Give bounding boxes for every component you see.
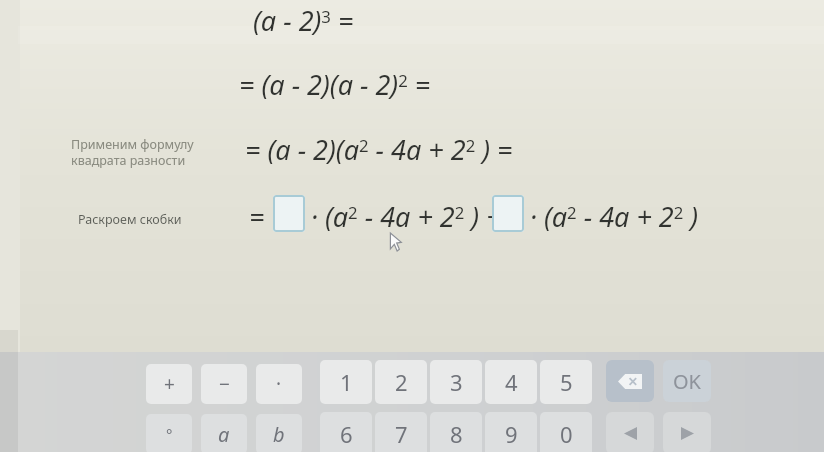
staticText: 9 bbox=[505, 419, 518, 449]
staticText: · (a2 − 4a + 22 ) + bbox=[311, 198, 502, 235]
staticText: = bbox=[249, 198, 265, 235]
staticText: 8 bbox=[450, 419, 463, 449]
button[interactable]: Первое поле ввода bbox=[273, 195, 305, 232]
button[interactable]: 6 bbox=[320, 412, 372, 452]
button[interactable]: 7 bbox=[375, 412, 427, 452]
staticText: · (a2 − 4a + 22 ) bbox=[530, 198, 699, 235]
staticText: · bbox=[276, 371, 282, 397]
staticText: a bbox=[218, 421, 230, 448]
staticText: 5 bbox=[560, 367, 573, 397]
button[interactable]: Backspace bbox=[606, 360, 654, 402]
staticText: 1 bbox=[340, 367, 353, 397]
button[interactable]: · bbox=[256, 364, 302, 404]
button[interactable]: − bbox=[201, 364, 247, 404]
staticText: OK bbox=[673, 368, 701, 395]
staticText: 6 bbox=[340, 419, 353, 449]
staticText: = (a − 2)(a − 2)2 = bbox=[239, 66, 431, 103]
button[interactable]: 0 bbox=[540, 412, 592, 452]
staticText: 3 bbox=[450, 367, 463, 397]
button[interactable]: 2 bbox=[375, 360, 427, 404]
button[interactable]: Вправо bbox=[663, 412, 711, 452]
button[interactable]: 9 bbox=[485, 412, 537, 452]
staticText: Применим формулу bbox=[71, 136, 194, 153]
button[interactable]: Второе поле ввода bbox=[492, 195, 524, 232]
button[interactable]: 5 bbox=[540, 360, 592, 404]
button[interactable]: 8 bbox=[430, 412, 482, 452]
button[interactable]: 4 bbox=[485, 360, 537, 404]
button[interactable]: ° bbox=[146, 414, 192, 452]
button[interactable]: b bbox=[256, 414, 302, 452]
staticText: 7 bbox=[395, 419, 408, 449]
button[interactable]: 3 bbox=[430, 360, 482, 404]
staticText: ° bbox=[166, 424, 173, 444]
staticText: Раскроем скобки bbox=[78, 211, 182, 228]
staticText: (a − 2)3 = bbox=[253, 2, 354, 39]
staticText: квадрата разности bbox=[71, 152, 186, 169]
staticText: − bbox=[219, 371, 230, 397]
staticText: = (a − 2)(a2 − 4a + 22 ) = bbox=[245, 131, 513, 168]
staticText: + bbox=[164, 371, 175, 397]
button[interactable]: Влево bbox=[606, 412, 654, 452]
button[interactable]: + bbox=[146, 364, 192, 404]
staticText: 4 bbox=[505, 367, 518, 397]
staticText: 2 bbox=[395, 367, 408, 397]
button[interactable]: 1 bbox=[320, 360, 372, 404]
button[interactable]: OK bbox=[663, 360, 711, 402]
staticText: 0 bbox=[560, 419, 573, 449]
staticText: b bbox=[273, 421, 285, 448]
button[interactable]: a bbox=[201, 414, 247, 452]
